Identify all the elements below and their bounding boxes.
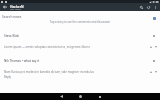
button[interactable]: Recents xyxy=(90,93,109,100)
button[interactable]: More options xyxy=(152,3,159,11)
staticText: Nam fluctus pro modest in borealis dictu… xyxy=(4,70,148,74)
button[interactable]: Steve Klab xyxy=(0,33,160,39)
button[interactable]: Refresh xyxy=(145,3,152,11)
staticText: Top News xyxy=(10,7,21,10)
button[interactable]: Downvote xyxy=(153,69,158,74)
staticText: Search news xyxy=(2,14,22,18)
button[interactable]: Upvote xyxy=(148,44,153,49)
staticText: HackerN xyxy=(10,4,24,8)
button[interactable]: Search xyxy=(138,3,145,11)
button[interactable]: Home xyxy=(71,93,90,100)
staticText: Steve Klab xyxy=(4,34,151,38)
button[interactable]: Navigate up xyxy=(0,3,10,11)
staticText: Lorem ipsum — omnis voluptas consectetur… xyxy=(4,45,148,49)
button[interactable]: More xyxy=(151,33,157,39)
button[interactable]: Nik Thomas • what say it xyxy=(0,58,160,64)
staticText: Nik Thomas • what say it xyxy=(4,59,151,63)
button[interactable]: More xyxy=(151,58,157,64)
button[interactable]: Upvote xyxy=(148,69,153,74)
staticText: Tap a story to see the comments and disc… xyxy=(0,20,160,24)
button[interactable]: Back xyxy=(52,93,71,100)
button[interactable]: Downvote xyxy=(153,44,158,49)
button[interactable]: Reply xyxy=(4,75,11,79)
